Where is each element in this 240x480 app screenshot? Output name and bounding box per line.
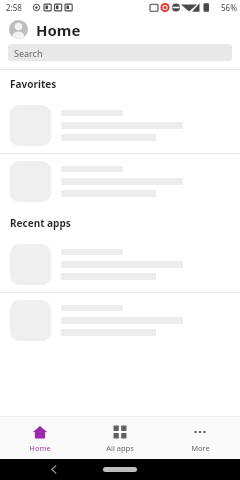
button[interactable]: Account	[9, 20, 28, 39]
staticText: All apps	[106, 443, 134, 453]
button[interactable]	[0, 98, 240, 153]
staticText: Home	[36, 20, 81, 40]
button[interactable]	[0, 237, 240, 292]
button[interactable]: All apps	[80, 417, 160, 459]
staticText: Home	[29, 443, 51, 453]
staticText: 56%	[221, 2, 237, 13]
staticText: 2:58	[6, 2, 22, 13]
button[interactable]: Search	[8, 44, 232, 61]
button[interactable]: More	[160, 417, 240, 459]
staticText: More	[191, 443, 210, 453]
staticText: Recent apps	[10, 216, 71, 230]
staticText: Search	[14, 47, 43, 59]
button[interactable]	[0, 154, 240, 209]
button[interactable]	[0, 293, 240, 348]
staticText: Favorites	[10, 77, 57, 91]
button[interactable]: Home	[0, 417, 80, 459]
